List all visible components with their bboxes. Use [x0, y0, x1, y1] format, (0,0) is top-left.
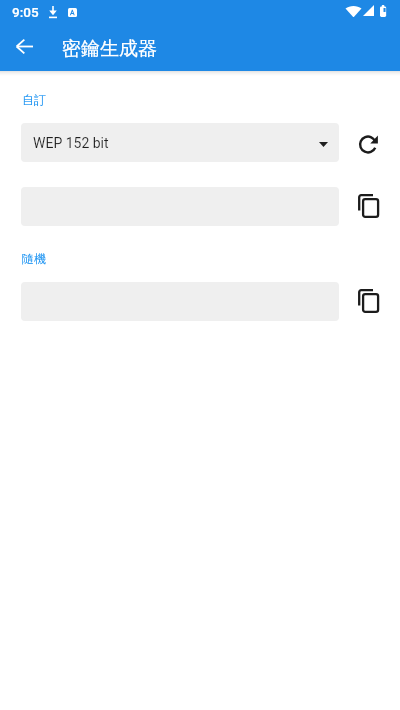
staticText: 9:05: [12, 4, 39, 20]
button[interactable]: Back: [1, 24, 49, 71]
button[interactable]: Copy: [339, 185, 400, 227]
staticText: 密鑰生成器: [62, 37, 157, 61]
button[interactable]: WEP 152 bit: [21, 123, 339, 162]
button[interactable]: Copy: [339, 280, 400, 322]
staticText: WEP 152 bit: [33, 135, 109, 151]
button[interactable]: Refresh: [339, 121, 400, 163]
staticText: 自訂: [22, 92, 46, 107]
staticText: A: [70, 9, 75, 17]
staticText: 隨機: [22, 251, 46, 266]
